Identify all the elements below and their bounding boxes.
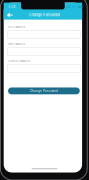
staticText: Confirm Password — [7, 60, 30, 63]
staticText: 2:28 — [8, 5, 15, 8]
button[interactable]: Change Password — [8, 87, 80, 94]
staticText: Change Password — [29, 12, 60, 17]
staticText: Change Password — [30, 89, 58, 93]
button[interactable]: Back — [5, 10, 15, 19]
staticText: Old Password — [7, 26, 25, 29]
staticText: New Password — [7, 43, 25, 46]
